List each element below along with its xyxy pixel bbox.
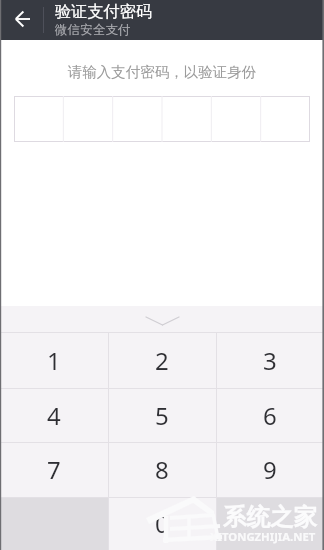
- button[interactable]: Back: [0, 0, 43, 40]
- staticText: 6: [263, 399, 277, 432]
- button[interactable]: 9: [216, 442, 324, 497]
- button[interactable]: 7: [0, 442, 108, 497]
- staticText: XITONGZHIJIA.NET: [210, 529, 316, 544]
- staticText: 验证支付密码: [55, 1, 153, 21]
- staticText: 0: [155, 507, 169, 540]
- staticText: 系统之家: [223, 502, 317, 532]
- staticText: 9: [263, 453, 277, 486]
- button[interactable]: 3: [216, 332, 324, 388]
- button[interactable]: Delete: [216, 497, 324, 550]
- staticText: 5: [155, 399, 169, 432]
- staticText: 2: [155, 344, 169, 377]
- staticText: 请输入支付密码，以验证身份: [0, 63, 324, 81]
- staticText: 8: [155, 453, 169, 486]
- button[interactable]: 0: [108, 497, 216, 550]
- button[interactable]: 4: [0, 388, 108, 442]
- button[interactable]: 1: [0, 332, 108, 388]
- staticText: 微信安全支付: [55, 22, 131, 38]
- button[interactable]: 8: [108, 442, 216, 497]
- staticText: 4: [47, 399, 61, 432]
- button[interactable]: 6: [216, 388, 324, 442]
- button[interactable]: [0, 497, 108, 550]
- button[interactable]: 2: [108, 332, 216, 388]
- button[interactable]: Hide keyboard: [0, 306, 324, 332]
- button[interactable]: 5: [108, 388, 216, 442]
- staticText: 1: [47, 344, 61, 377]
- staticText: 3: [263, 344, 277, 377]
- staticText: 7: [47, 453, 61, 486]
